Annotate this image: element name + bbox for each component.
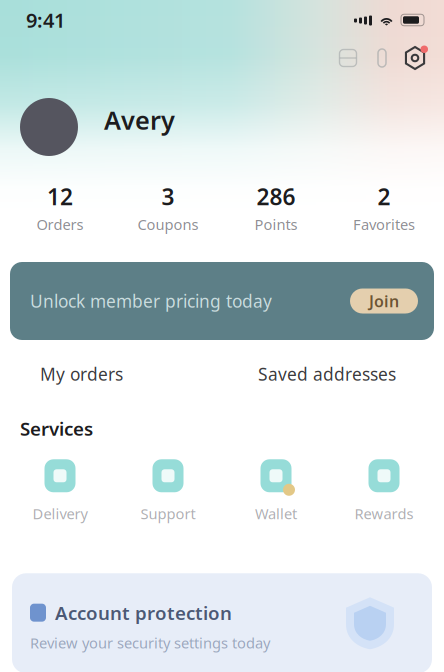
staticText: 286 <box>256 181 295 211</box>
staticText: Join <box>369 290 399 312</box>
staticText: Favorites <box>353 214 415 234</box>
staticText: Support <box>140 504 195 523</box>
button[interactable]: Rewards <box>330 458 438 523</box>
staticText: Wallet <box>255 504 297 523</box>
button[interactable]: 3 <box>114 179 222 236</box>
button[interactable]: Account protection <box>12 573 432 672</box>
button[interactable]: 286 <box>222 179 330 236</box>
staticText: 3 <box>161 181 174 211</box>
button[interactable]: Messages <box>365 41 399 75</box>
button[interactable]: Scan code <box>331 41 365 75</box>
button[interactable]: Support <box>114 458 222 523</box>
button[interactable]: My orders <box>4 354 222 394</box>
staticText: Services <box>20 416 93 441</box>
staticText: Orders <box>36 214 83 234</box>
staticText: Avery <box>104 103 175 137</box>
staticText: Delivery <box>32 504 87 523</box>
button[interactable]: Saved addresses <box>222 354 440 394</box>
staticText: Rewards <box>354 504 413 523</box>
staticText: Unlock member pricing today <box>30 289 272 312</box>
button[interactable]: Unlock member pricing today <box>10 262 434 340</box>
staticText: 9:41 <box>26 7 65 33</box>
staticText: Review your security settings today <box>30 633 270 653</box>
button[interactable]: Avery <box>78 98 175 156</box>
staticText: 12 <box>47 181 73 211</box>
staticText: My orders <box>40 362 123 385</box>
button[interactable]: Settings <box>399 41 431 75</box>
staticText: 2 <box>377 181 390 211</box>
staticText: Account protection <box>55 600 232 625</box>
staticText: Saved addresses <box>258 362 396 385</box>
button[interactable]: 2 <box>330 179 438 236</box>
staticText: Points <box>254 214 297 234</box>
button[interactable]: Delivery <box>6 458 114 523</box>
staticText: Coupons <box>137 214 198 234</box>
button[interactable]: Profile photo <box>20 98 78 156</box>
button[interactable]: Wallet <box>222 458 330 523</box>
button[interactable]: 12 <box>6 179 114 236</box>
